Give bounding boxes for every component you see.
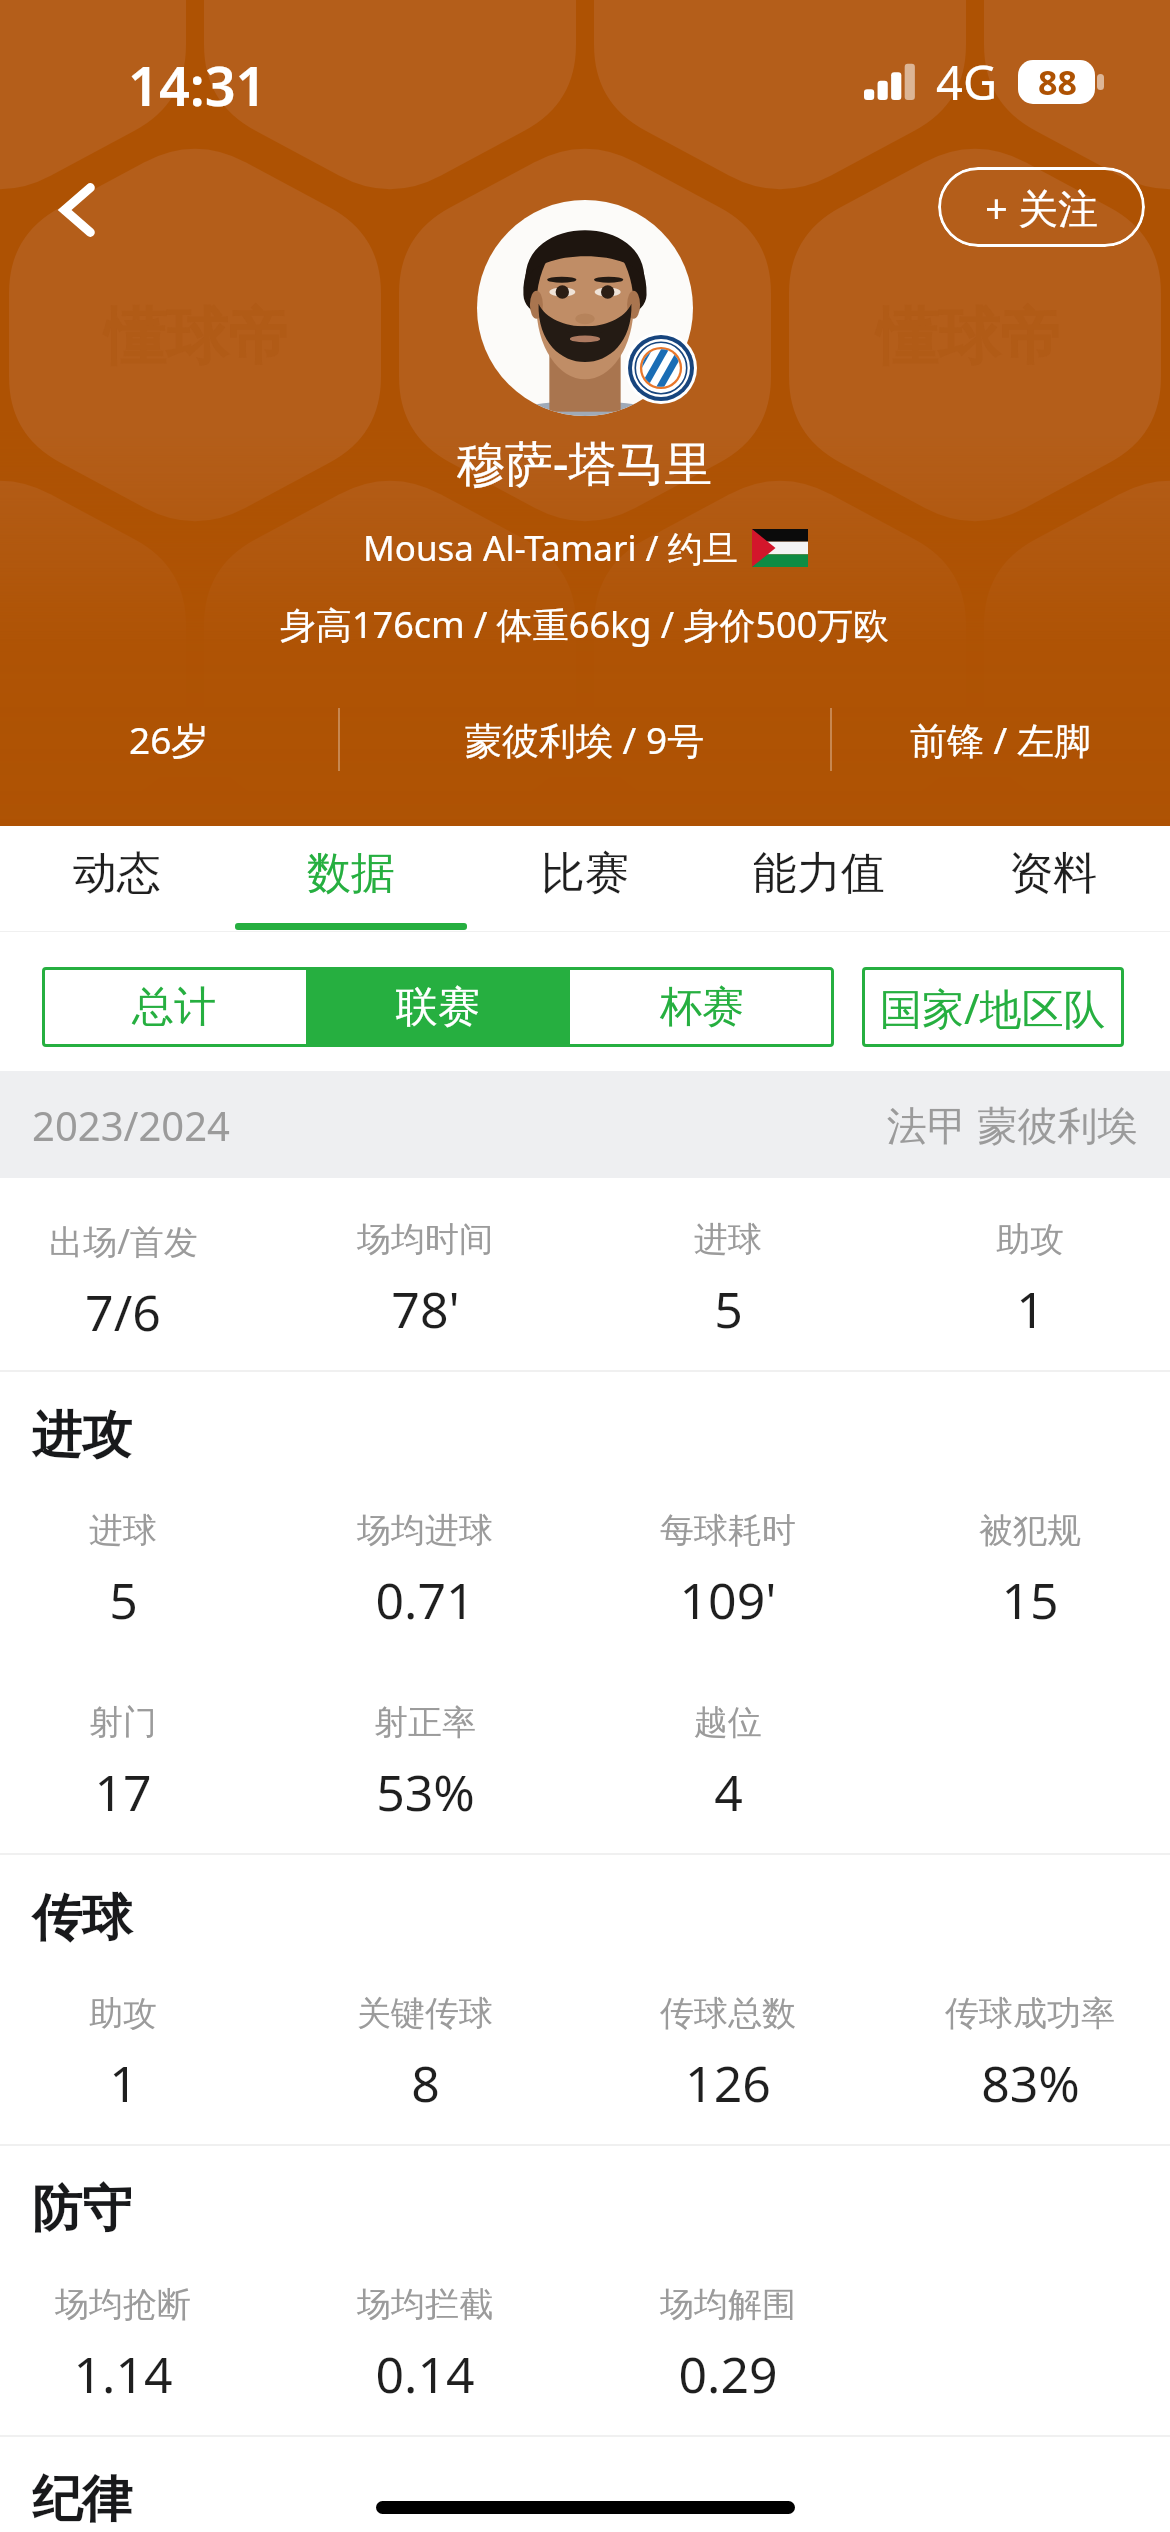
staticText: 5	[109, 1566, 138, 1634]
staticText: 助攻	[996, 1218, 1064, 1261]
staticText: 0.71	[375, 1566, 475, 1634]
staticText: 1	[109, 2049, 138, 2117]
staticText: 杯赛	[660, 981, 744, 1034]
staticText: 53%	[376, 1758, 475, 1826]
button[interactable]: 动态	[0, 826, 234, 932]
staticText: 蒙彼利埃 / 9号	[465, 714, 705, 765]
staticText: 防守	[32, 2178, 132, 2241]
staticText: 83%	[981, 2049, 1080, 2117]
staticText: 进球	[89, 1509, 157, 1552]
button[interactable]: + 关注	[938, 167, 1145, 247]
button[interactable]: 资料	[936, 826, 1170, 932]
staticText: 场均进球	[357, 1509, 493, 1552]
staticText: + 关注	[985, 180, 1099, 235]
staticText: 14:31	[128, 48, 267, 122]
staticText: 0.29	[678, 2340, 778, 2408]
button[interactable]: 总计	[42, 967, 306, 1047]
staticText: 传球成功率	[945, 1992, 1115, 2035]
staticText: 126	[685, 2049, 771, 2117]
staticText: 88	[1038, 59, 1077, 105]
staticText: 每球耗时	[660, 1509, 796, 1552]
staticText: 8	[411, 2049, 440, 2117]
staticText: 传球总数	[660, 1992, 796, 2035]
button[interactable]: 能力值	[702, 826, 936, 932]
staticText: 被犯规	[979, 1509, 1081, 1552]
staticText: 0.14	[375, 2340, 475, 2408]
button[interactable]: 联赛	[306, 967, 570, 1047]
staticText: 法甲 蒙彼利埃	[887, 1097, 1138, 1152]
staticText: Mousa Al-Tamari / 约旦	[363, 524, 738, 572]
staticText: 射正率	[374, 1701, 476, 1744]
staticText: 1.14	[73, 2340, 173, 2408]
staticText: 国家/地区队	[880, 979, 1106, 1036]
button[interactable]: 比赛	[468, 826, 702, 932]
staticText: 17	[94, 1758, 152, 1826]
staticText: 穆萨-塔马里	[457, 430, 713, 496]
staticText: 场均时间	[357, 1218, 493, 1261]
button[interactable]: Player photo	[477, 200, 693, 416]
staticText: 动态	[73, 846, 161, 901]
staticText: 15	[1001, 1566, 1059, 1634]
staticText: 纪律	[32, 2468, 132, 2531]
staticText: 5	[714, 1275, 743, 1343]
staticText: 越位	[694, 1701, 762, 1744]
staticText: 7/6	[85, 1278, 161, 1346]
staticText: 26岁	[129, 714, 209, 765]
staticText: 能力值	[753, 846, 885, 901]
staticText: 进攻	[32, 1404, 132, 1467]
button[interactable]: 数据	[234, 826, 468, 932]
staticText: 联赛	[396, 981, 480, 1034]
button[interactable]: Back	[28, 160, 128, 260]
staticText: 射门	[89, 1701, 157, 1744]
staticText: 数据	[307, 846, 395, 901]
staticText: 前锋 / 左脚	[910, 714, 1092, 765]
staticText: 比赛	[541, 846, 629, 901]
button[interactable]: 杯赛	[570, 967, 834, 1047]
staticText: 场均抢断	[55, 2283, 191, 2326]
staticText: 场均解围	[660, 2283, 796, 2326]
staticText: 78'	[391, 1275, 460, 1343]
staticText: 传球	[32, 1887, 132, 1950]
staticText: 总计	[132, 981, 216, 1034]
staticText: 4	[714, 1758, 743, 1826]
staticText: 助攻	[89, 1992, 157, 2035]
staticText: 场均拦截	[357, 2283, 493, 2326]
staticText: 关键传球	[357, 1992, 493, 2035]
staticText: 身高176cm / 体重66kg / 身价500万欧	[280, 600, 890, 649]
staticText: 进球	[694, 1218, 762, 1261]
staticText: 109'	[679, 1566, 777, 1634]
staticText: 出场/首发	[49, 1218, 198, 1264]
staticText: 2023/2024	[32, 1098, 230, 1152]
staticText: 1	[1016, 1275, 1045, 1343]
staticText: 4G	[936, 50, 998, 114]
button[interactable]: 国家/地区队	[862, 967, 1124, 1047]
staticText: 资料	[1009, 846, 1097, 901]
